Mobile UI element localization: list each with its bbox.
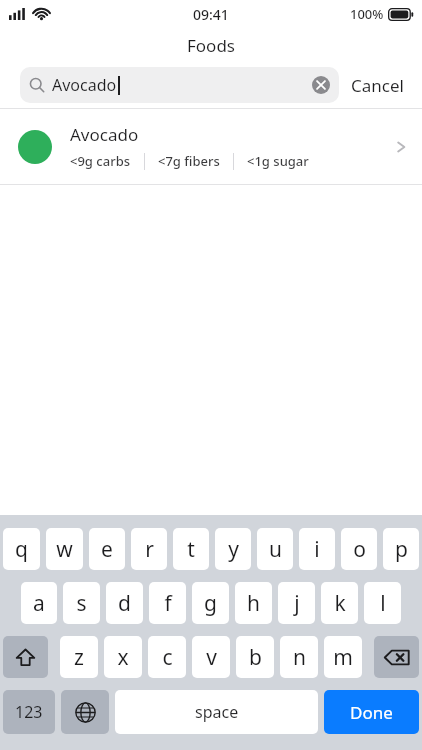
staticText: 100% [350,5,384,23]
button[interactable]: Change keyboard language [61,690,109,734]
staticText: v [206,643,217,672]
button[interactable]: m [324,636,362,678]
staticText: n [293,643,306,672]
staticText: i [314,535,320,564]
button[interactable]: l [364,582,401,624]
staticText: b [249,643,262,672]
staticText: y [228,535,239,564]
staticText: h [247,589,260,618]
staticText: s [76,589,87,618]
button[interactable]: Avocado [0,109,422,184]
button[interactable]: Avocado [20,67,339,103]
staticText: k [334,589,346,618]
button[interactable]: w [46,528,83,570]
staticText: g [204,589,217,618]
staticText: t [187,535,195,564]
button[interactable]: Backspace [374,636,419,678]
button[interactable]: s [63,582,100,624]
button[interactable]: q [3,528,40,570]
staticText: q [15,535,28,564]
button[interactable]: d [106,582,143,624]
staticText: f [164,589,172,618]
button[interactable]: r [131,528,167,570]
staticText: o [353,535,366,564]
button[interactable]: i [299,528,335,570]
button[interactable]: g [192,582,229,624]
staticText: u [269,535,282,564]
staticText: d [118,589,131,618]
button[interactable]: a [21,582,57,624]
button[interactable]: t [173,528,209,570]
staticText: 123 [15,701,43,723]
button[interactable]: Clear text [312,76,330,94]
button[interactable]: v [192,636,230,678]
other: Open details [394,140,408,154]
staticText: Done [350,701,393,724]
button[interactable]: n [280,636,318,678]
button[interactable]: f [149,582,186,624]
staticText: space [195,701,239,723]
button[interactable]: y [215,528,251,570]
staticText: Cancel [351,74,404,97]
staticText: Foods [187,34,235,57]
staticText: m [333,643,353,672]
staticText: z [74,643,84,672]
button[interactable]: Cancel [339,68,408,103]
button[interactable]: h [235,582,272,624]
button[interactable]: e [89,528,125,570]
button[interactable]: x [104,636,142,678]
staticText: c [162,643,173,672]
staticText: r [145,535,154,564]
button[interactable]: 123 [3,690,55,734]
button[interactable]: Done [324,690,419,734]
staticText: 09:41 [193,5,229,24]
staticText: <7g fibers [158,152,220,170]
button[interactable]: c [148,636,186,678]
staticText: l [380,589,386,618]
staticText: a [33,589,45,618]
staticText: w [56,535,73,564]
button[interactable]: o [341,528,377,570]
button[interactable]: k [321,582,358,624]
button[interactable]: z [60,636,98,678]
staticText: p [395,535,408,564]
staticText: j [294,589,300,618]
staticText: Avocado [70,123,139,146]
button[interactable]: b [236,636,274,678]
staticText: Avocado [52,74,117,96]
button[interactable]: Shift [3,636,48,678]
button[interactable]: space [115,690,318,734]
button[interactable]: u [257,528,293,570]
staticText: x [117,643,129,672]
button[interactable]: p [383,528,419,570]
button[interactable]: j [278,582,315,624]
staticText: <9g carbs [70,152,131,170]
staticText: <1g sugar [247,152,309,170]
staticText: e [101,535,113,564]
